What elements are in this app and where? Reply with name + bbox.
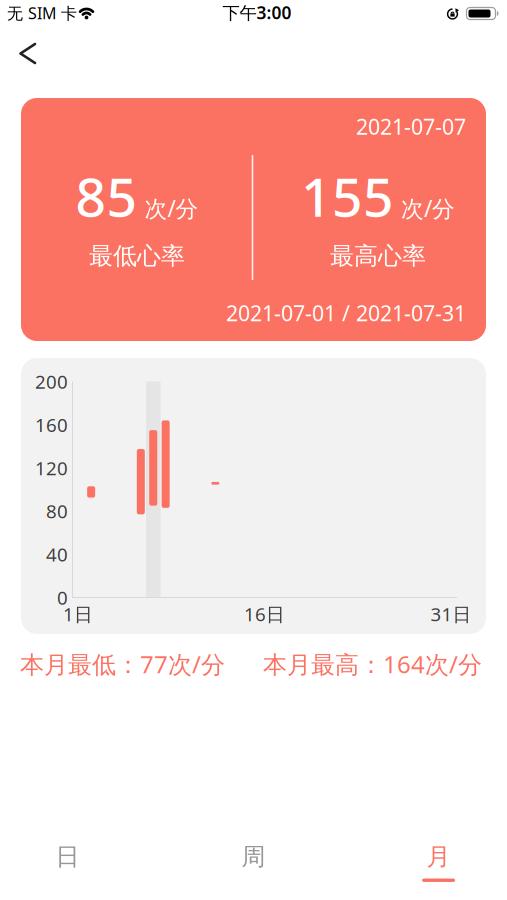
staticText: 本月最低：77次/分 [20, 648, 225, 680]
staticText: 200 [35, 369, 68, 394]
staticText: 155 [301, 161, 394, 231]
staticText: 最高心率 [330, 241, 426, 271]
staticText: 1日 [63, 602, 93, 626]
staticText: 周 [241, 842, 265, 872]
button[interactable]: 日 [36, 840, 98, 884]
staticText: 本月最高：164次/分 [263, 648, 482, 680]
staticText: 次/分 [401, 193, 455, 223]
button[interactable]: 周 [222, 840, 284, 884]
staticText: 160 [35, 412, 68, 437]
staticText: 日 [55, 842, 79, 872]
staticText: 次/分 [144, 193, 198, 223]
staticText: 无 SIM 卡 [7, 2, 77, 24]
button[interactable]: Back [6, 36, 50, 70]
staticText: 最低心率 [89, 241, 185, 271]
staticText: 31日 [430, 602, 471, 626]
staticText: 0 [57, 585, 68, 610]
staticText: 120 [35, 455, 68, 480]
button[interactable]: 月 [408, 840, 470, 884]
staticText: 月 [427, 842, 451, 872]
staticText: 2021-07-01 / 2021-07-31 [226, 299, 466, 327]
staticText: 16日 [244, 602, 285, 626]
staticText: 下午3:00 [222, 1, 291, 24]
staticText: 80 [46, 499, 68, 523]
staticText: 40 [46, 542, 68, 567]
staticText: 2021-07-07 [356, 112, 466, 141]
staticText: 85 [75, 161, 137, 231]
